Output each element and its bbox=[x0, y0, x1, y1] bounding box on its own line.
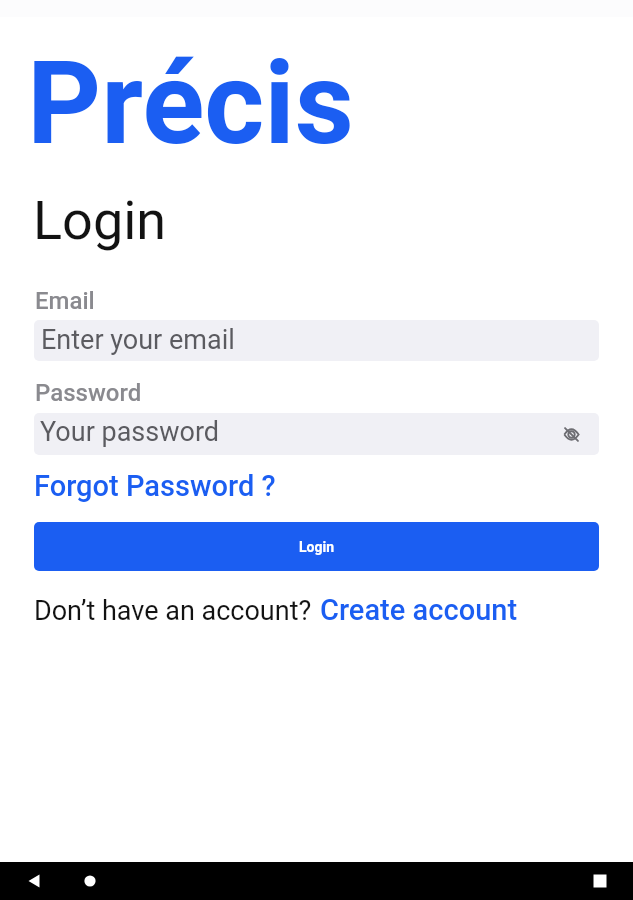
staticText: Login bbox=[33, 189, 167, 252]
button[interactable]: Home bbox=[68, 862, 112, 900]
staticText: Don’t have an account? bbox=[34, 595, 312, 627]
button[interactable]: Your password bbox=[34, 413, 599, 455]
staticText: Your password bbox=[40, 416, 220, 448]
button[interactable]: Back bbox=[12, 862, 56, 900]
staticText: Login bbox=[299, 539, 335, 555]
button[interactable]: Show password bbox=[559, 422, 583, 446]
staticText: Enter your email bbox=[41, 324, 235, 356]
staticText: Password bbox=[35, 379, 142, 407]
staticText: Forgot Password ? bbox=[34, 469, 276, 503]
staticText: Précis bbox=[27, 36, 355, 171]
staticText: Create account bbox=[320, 593, 518, 627]
button[interactable]: Enter your email bbox=[34, 320, 599, 361]
staticText: Email bbox=[35, 287, 95, 315]
button[interactable]: Login bbox=[34, 522, 599, 571]
button[interactable]: Forgot Password ? bbox=[28, 467, 282, 505]
button[interactable]: Recent apps bbox=[578, 862, 622, 900]
button[interactable]: Create account bbox=[320, 593, 518, 627]
